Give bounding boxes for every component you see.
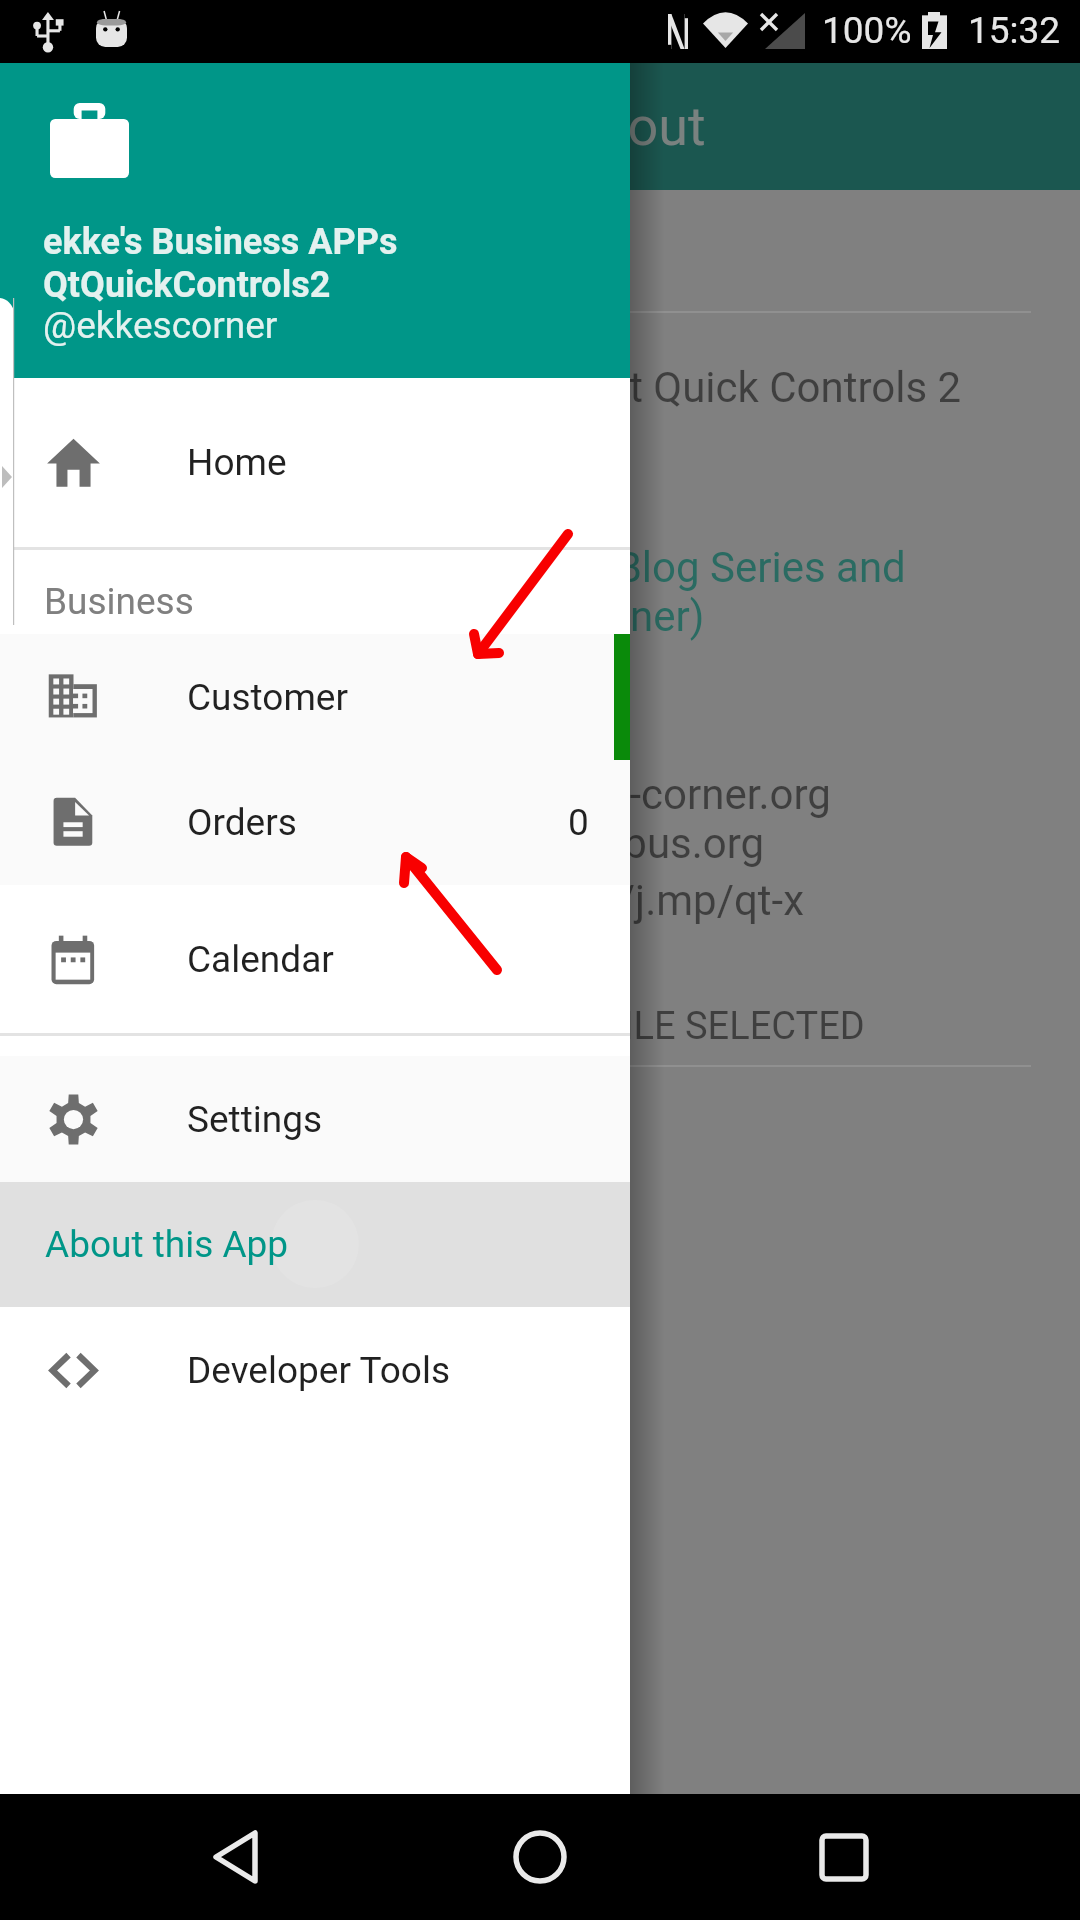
button[interactable]: Customer: [0, 634, 630, 760]
staticText: ekke's Business APPs: [43, 221, 398, 263]
staticText: Settings: [187, 1098, 323, 1141]
button[interactable]: Calendar: [0, 885, 630, 1033]
button[interactable]: Home: [0, 378, 630, 547]
other: Calendar: [46, 932, 101, 987]
staticText: subscribe @ekkescorner): [231, 592, 705, 641]
staticText: 15:32: [968, 9, 1061, 52]
staticText: Calendar: [187, 938, 334, 981]
other: Home: [46, 435, 101, 490]
other: Settings: [46, 1092, 101, 1147]
staticText: About this App: [45, 1223, 289, 1266]
button[interactable]: Developer Tools: [0, 1307, 630, 1433]
staticText: (see also the Blog Series and: [366, 543, 906, 592]
button[interactable]: Settings: [0, 1056, 630, 1182]
staticText: https://qt-bus.org: [438, 819, 765, 868]
staticText: Home: [187, 441, 287, 484]
staticText: About: [562, 95, 706, 158]
staticText: @ekkescorner: [43, 304, 278, 347]
button[interactable]: Orders: [0, 760, 630, 885]
staticText: Business: [44, 580, 194, 623]
staticText: QtQuickControls2: [43, 264, 331, 306]
staticText: Developer Tools: [187, 1349, 451, 1392]
button[interactable]: About: [0, 63, 1080, 190]
other: System navigation: [0, 1794, 1080, 1920]
staticText: Customer: [187, 676, 349, 719]
staticText: Orders: [187, 801, 297, 844]
other: Orders: [46, 795, 101, 850]
staticText: https://ekkes-corner.org: [385, 770, 831, 819]
button[interactable]: About this App: [0, 1182, 630, 1307]
staticText: ekke's Demo APP for Qt Quick Controls 2: [201, 363, 962, 412]
staticText: NO PROFILE SELECTED: [466, 1004, 865, 1049]
button[interactable]: ekke's Business APPs: [0, 63, 630, 378]
other: Developer Tools: [46, 1343, 101, 1398]
staticText: 100%: [822, 9, 912, 52]
staticText: https://j.mp/qt-x: [499, 876, 805, 925]
other: Customer: [46, 670, 101, 725]
staticText: 0: [568, 801, 589, 844]
